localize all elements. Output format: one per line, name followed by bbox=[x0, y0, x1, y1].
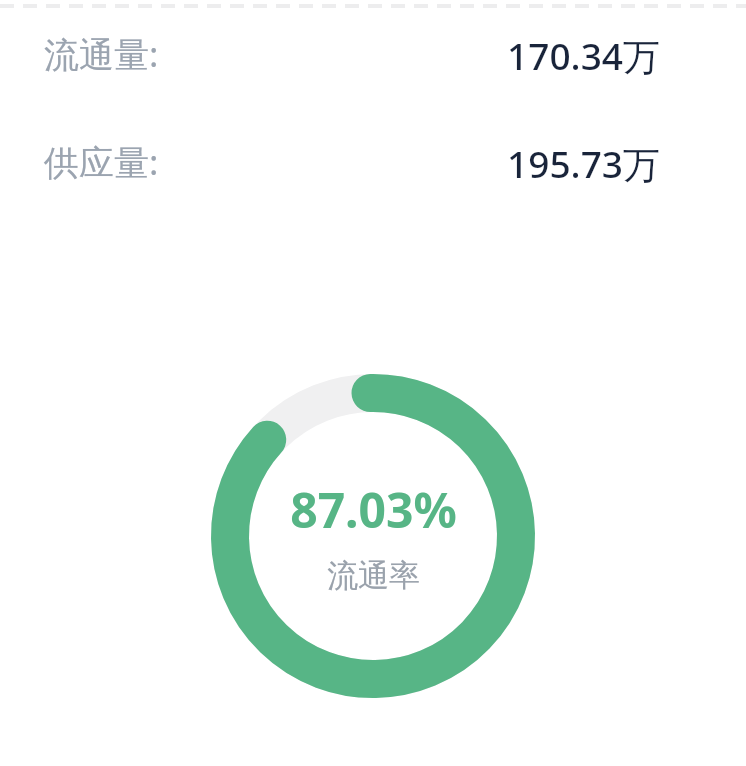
staticText: 170.34万 bbox=[507, 30, 660, 78]
staticText: 流通量: bbox=[44, 30, 159, 78]
button[interactable]: 供应量: bbox=[0, 138, 746, 186]
button[interactable]: 流通量: bbox=[0, 30, 746, 78]
staticText: 87.03% bbox=[290, 477, 457, 542]
button[interactable]: 流通率 87.03% bbox=[208, 371, 538, 701]
staticText: 流通率 bbox=[327, 556, 420, 595]
staticText: 供应量: bbox=[44, 138, 159, 186]
staticText: 195.73万 bbox=[507, 138, 660, 186]
